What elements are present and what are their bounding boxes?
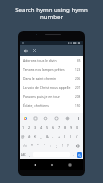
button[interactable]: / — [74, 132, 80, 141]
staticText: ABC — [21, 153, 26, 157]
staticText: 4 — [40, 125, 43, 130]
staticText: - — [52, 134, 54, 139]
staticText: ) — [70, 134, 72, 139]
button[interactable]: Dans le saint chemin — [20, 74, 83, 83]
button[interactable]: , — [27, 150, 32, 159]
staticText: , — [29, 152, 30, 157]
button[interactable]: 1 — [20, 123, 26, 132]
staticText: # — [28, 134, 31, 139]
button[interactable]: 0 — [74, 123, 80, 132]
staticText: Tenons nos lampes prêtes — [23, 67, 65, 72]
staticText: ' — [44, 143, 45, 148]
button[interactable]: Backspace — [71, 141, 83, 150]
button[interactable]: Back — [31, 161, 38, 168]
button[interactable]: 8 — [62, 123, 68, 132]
button[interactable]: # — [26, 132, 32, 141]
staticText: Search hymn using hymn number — [11, 5, 92, 21]
button[interactable]: ) — [68, 132, 74, 141]
button[interactable]: ' — [41, 141, 47, 150]
staticText: 9 — [70, 125, 73, 130]
button[interactable]: La voix de Christ nous appelle — [20, 83, 83, 92]
button[interactable]: & — [44, 132, 50, 141]
button[interactable]: Passons puis-je en tour — [20, 92, 83, 101]
button[interactable]: Adorons tous le divin — [20, 56, 83, 65]
staticText: Dans le saint chemin — [23, 76, 57, 81]
button[interactable]: Back — [21, 46, 30, 55]
button[interactable]: ; — [53, 141, 59, 150]
staticText: 150 — [75, 104, 81, 108]
button[interactable]: Clear search — [30, 46, 39, 55]
button[interactable]: Google — [23, 116, 28, 121]
staticText: ; — [56, 143, 57, 148]
staticText: 5 — [46, 125, 49, 130]
staticText: 8 — [64, 125, 67, 130]
button[interactable]: More options — [76, 116, 81, 121]
button[interactable]: ( — [62, 132, 68, 141]
button[interactable]: Éclate, chrétiens — [20, 101, 83, 110]
button[interactable]: 7 — [56, 123, 62, 132]
button[interactable]: 6 — [50, 123, 56, 132]
button[interactable]: - — [50, 132, 56, 141]
button[interactable]: Tenons nos lampes prêtes — [20, 65, 83, 74]
button[interactable]: 5 — [44, 123, 50, 132]
staticText: + — [58, 134, 61, 139]
button[interactable]: Themes — [33, 116, 38, 121]
button[interactable]: € — [32, 132, 38, 141]
button[interactable]: ! — [59, 141, 65, 150]
staticText: Éclate, chrétiens — [23, 103, 49, 108]
staticText: La voix de Christ nous appelle — [23, 85, 71, 90]
staticText: 3 — [34, 125, 37, 130]
button[interactable]: Home — [48, 161, 55, 168]
button[interactable]: GIF — [43, 116, 48, 121]
button[interactable]: : — [47, 141, 53, 150]
staticText: 2 — [28, 125, 31, 130]
button[interactable]: 4 — [38, 123, 44, 132]
staticText: @ — [21, 134, 25, 139]
button[interactable]: " — [35, 141, 41, 150]
staticText: Passons puis-je en tour — [23, 94, 60, 99]
staticText: 7 — [58, 125, 61, 130]
staticText: ! — [62, 143, 63, 148]
staticText: € — [34, 134, 37, 139]
staticText: =\< — [23, 144, 27, 148]
staticText: 6 — [52, 125, 55, 130]
button[interactable]: + — [56, 132, 62, 141]
button[interactable]: 9 — [68, 123, 74, 132]
button[interactable]: Recents — [66, 161, 73, 168]
button[interactable]: 3 — [32, 123, 38, 132]
button[interactable]: Stickers — [54, 116, 59, 121]
staticText: 123 — [75, 68, 81, 72]
button[interactable]: =\< — [20, 141, 29, 150]
staticText: ( — [64, 134, 66, 139]
staticText: * — [31, 143, 33, 148]
staticText: " — [37, 143, 39, 148]
button[interactable]: @ — [20, 132, 26, 141]
button[interactable]: . — [71, 150, 76, 159]
button[interactable]: _ — [38, 132, 44, 141]
button[interactable]: ? — [65, 141, 71, 150]
button[interactable]: Settings — [65, 116, 70, 121]
staticText: 85 — [77, 59, 81, 63]
staticText: Adorons tous le divin — [23, 58, 57, 63]
staticText: 207 — [75, 86, 81, 90]
staticText: 0 — [76, 125, 79, 130]
staticText: & — [46, 134, 49, 139]
button[interactable]: 2 — [26, 123, 32, 132]
staticText: 1 — [22, 125, 25, 130]
button[interactable]: * — [29, 141, 35, 150]
staticText: / — [76, 134, 78, 139]
staticText: 208 — [75, 95, 81, 99]
button[interactable]: ABC — [20, 150, 27, 159]
staticText: _ — [40, 134, 42, 139]
staticText: . — [73, 152, 74, 157]
staticText: 206 — [75, 77, 81, 81]
button[interactable]: Search — [77, 152, 82, 158]
staticText: : — [50, 143, 51, 148]
staticText: ? — [67, 143, 69, 148]
